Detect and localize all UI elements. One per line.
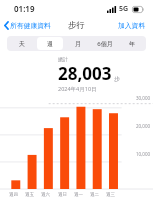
staticText: 步行: [68, 20, 85, 31]
staticText: 週日: [58, 192, 67, 198]
staticText: 月: [75, 40, 81, 48]
staticText: 步: [114, 75, 120, 83]
staticText: 週四: [9, 192, 18, 198]
staticText: 30,000: [136, 95, 151, 101]
staticText: 總計: [58, 56, 68, 62]
staticText: 週: [47, 40, 53, 48]
staticText: 6個月: [97, 40, 113, 48]
button[interactable]: 週: [37, 37, 63, 50]
staticText: 5G: [119, 4, 129, 14]
staticText: 10,000: [136, 151, 151, 157]
staticText: 28,003: [58, 62, 112, 85]
staticText: 週三: [106, 192, 115, 198]
button[interactable]: 月: [65, 37, 90, 50]
staticText: 天: [19, 40, 25, 48]
staticText: 年: [129, 40, 135, 48]
button[interactable]: 天: [9, 37, 35, 50]
staticText: 01:19: [14, 3, 35, 14]
button[interactable]: 所有健康資料: [0, 18, 56, 33]
button[interactable]: 6個月: [92, 37, 117, 50]
staticText: 所有健康資料: [10, 21, 51, 30]
button[interactable]: 加入資料: [111, 18, 153, 33]
staticText: 2024年4月10日: [58, 85, 97, 93]
staticText: 週六: [41, 192, 50, 198]
staticText: 20,000: [136, 123, 151, 129]
staticText: 週一: [74, 192, 83, 198]
staticText: 週二: [90, 192, 99, 198]
button[interactable]: 年: [119, 37, 144, 50]
staticText: 週五: [25, 192, 34, 198]
